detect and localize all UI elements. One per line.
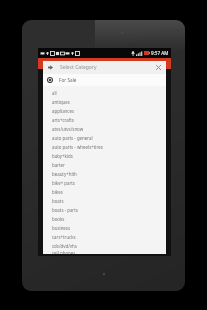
staticText: barter bbox=[52, 162, 65, 168]
button[interactable]: antiques bbox=[43, 97, 166, 106]
staticText: bikes bbox=[52, 189, 63, 195]
staticText: boats bbox=[52, 198, 64, 204]
button[interactable]: business bbox=[43, 223, 166, 232]
button[interactable]: baby+kids bbox=[43, 151, 166, 160]
staticText: boats - parts bbox=[52, 207, 78, 213]
button[interactable]: arts+crafts bbox=[43, 115, 166, 124]
button[interactable]: bikes bbox=[43, 187, 166, 196]
staticText: baby+kids bbox=[52, 153, 73, 159]
button[interactable]: appliances bbox=[43, 106, 166, 115]
button[interactable]: auto parts - general bbox=[43, 133, 166, 142]
button[interactable]: barter bbox=[43, 160, 166, 169]
staticText: books bbox=[52, 216, 65, 222]
staticText: appliances bbox=[52, 108, 74, 114]
button[interactable]: Close bbox=[154, 63, 163, 72]
button[interactable]: books bbox=[43, 214, 166, 223]
button[interactable]: boats - parts bbox=[43, 205, 166, 214]
staticText: antiques bbox=[52, 99, 70, 105]
button[interactable]: auto parts - wheels+tires bbox=[43, 142, 166, 151]
staticText: cars+trucks bbox=[52, 234, 76, 240]
staticText: bike+ parts bbox=[52, 180, 75, 186]
button[interactable]: cds/dvd/vhs bbox=[43, 241, 166, 250]
staticText: auto parts - general bbox=[52, 135, 93, 141]
button[interactable]: Back bbox=[46, 63, 55, 72]
button[interactable]: cars+trucks bbox=[43, 232, 166, 241]
button[interactable]: all bbox=[43, 88, 166, 97]
button[interactable]: For Sale bbox=[43, 74, 166, 86]
staticText: atvs/utvs/snow bbox=[52, 126, 84, 132]
staticText: cell phones bbox=[52, 250, 76, 254]
staticText: auto parts - wheels+tires bbox=[52, 144, 103, 150]
staticText: 9:57 AM bbox=[151, 50, 169, 56]
staticText: Select Category bbox=[60, 64, 97, 71]
staticText: all bbox=[52, 90, 57, 96]
button[interactable]: atvs/utvs/snow bbox=[43, 124, 166, 133]
button[interactable]: cell phones bbox=[43, 250, 166, 254]
staticText: For Sale bbox=[59, 77, 77, 83]
staticText: arts+crafts bbox=[52, 117, 74, 123]
staticText: beauty+hlth bbox=[52, 171, 77, 177]
button[interactable]: boats bbox=[43, 196, 166, 205]
button[interactable]: bike+ parts bbox=[43, 178, 166, 187]
staticText: business bbox=[52, 225, 71, 231]
button[interactable]: beauty+hlth bbox=[43, 169, 166, 178]
staticText: cds/dvd/vhs bbox=[52, 243, 77, 249]
